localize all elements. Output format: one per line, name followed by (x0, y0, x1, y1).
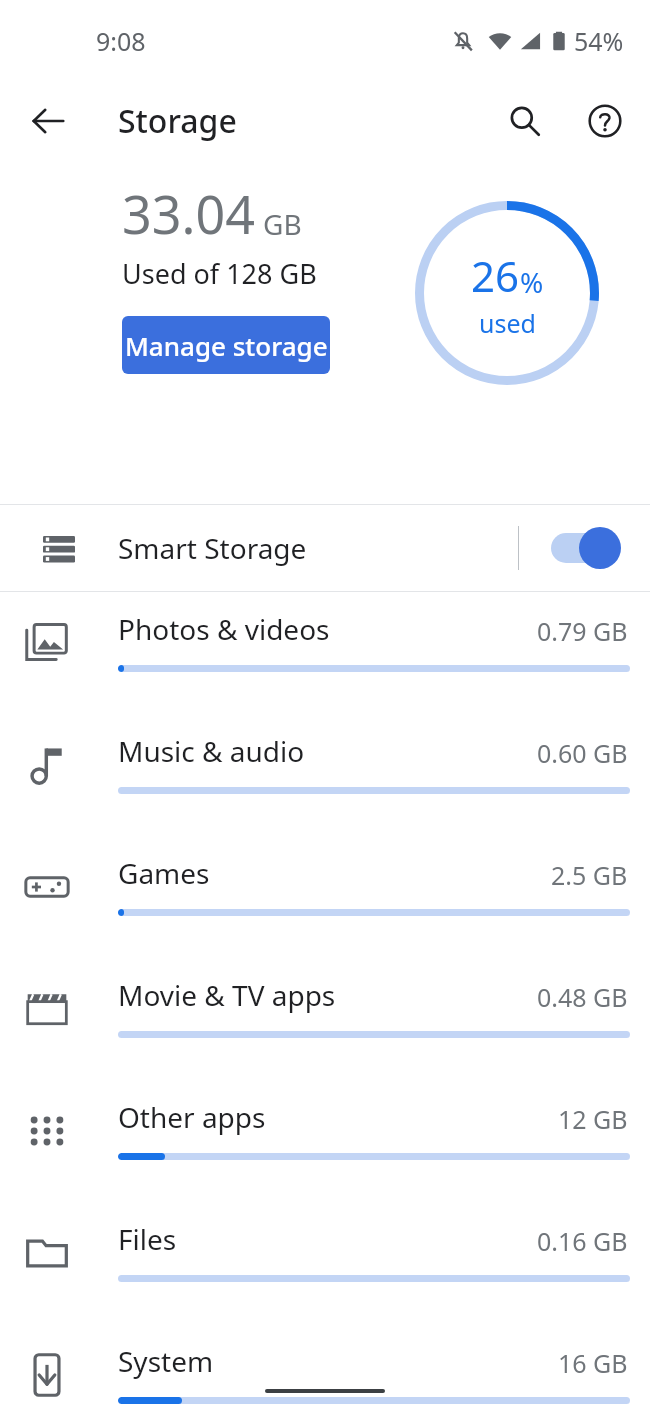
staticText: Storage (118, 99, 237, 143)
button[interactable]: Smart Storage (0, 505, 650, 591)
button[interactable]: Games (0, 836, 650, 958)
staticText: 54% (574, 24, 624, 58)
staticText: 0.48 GB (537, 980, 628, 1014)
button[interactable]: Search (496, 92, 554, 150)
staticText: 0.60 GB (537, 736, 628, 770)
staticText: Movie & TV apps (118, 976, 336, 1014)
staticText: 26 (471, 247, 520, 304)
staticText: Manage storage (125, 328, 328, 363)
button[interactable]: Manage storage (122, 316, 330, 374)
staticText: 0.16 GB (537, 1224, 628, 1258)
staticText: 16 GB (558, 1346, 628, 1380)
staticText: Other apps (118, 1098, 266, 1136)
staticText: Games (118, 854, 210, 892)
staticText: 33.04 (122, 178, 255, 249)
staticText: 12 GB (558, 1102, 628, 1136)
staticText: Smart Storage (118, 529, 307, 567)
staticText: 0.79 GB (537, 614, 628, 648)
staticText: 2.5 GB (551, 858, 628, 892)
button[interactable]: Movie & TV apps (0, 958, 650, 1080)
staticText: System (118, 1342, 214, 1380)
staticText: used (479, 306, 536, 340)
staticText: GB (263, 205, 302, 243)
button[interactable]: System (0, 1324, 650, 1409)
staticText: % (520, 263, 544, 301)
button[interactable]: Smart Storage toggle (519, 505, 650, 591)
button[interactable]: Help (576, 92, 634, 150)
button[interactable]: Files (0, 1202, 650, 1324)
button[interactable]: Photos & videos (0, 592, 650, 714)
staticText: Files (118, 1220, 177, 1258)
staticText: Used of 128 GB (122, 255, 317, 292)
button[interactable]: Other apps (0, 1080, 650, 1202)
staticText: Music & audio (118, 732, 305, 770)
button[interactable]: Back (20, 93, 76, 149)
staticText: Photos & videos (118, 610, 330, 648)
button[interactable]: Music & audio (0, 714, 650, 836)
staticText: 9:08 (96, 24, 146, 58)
